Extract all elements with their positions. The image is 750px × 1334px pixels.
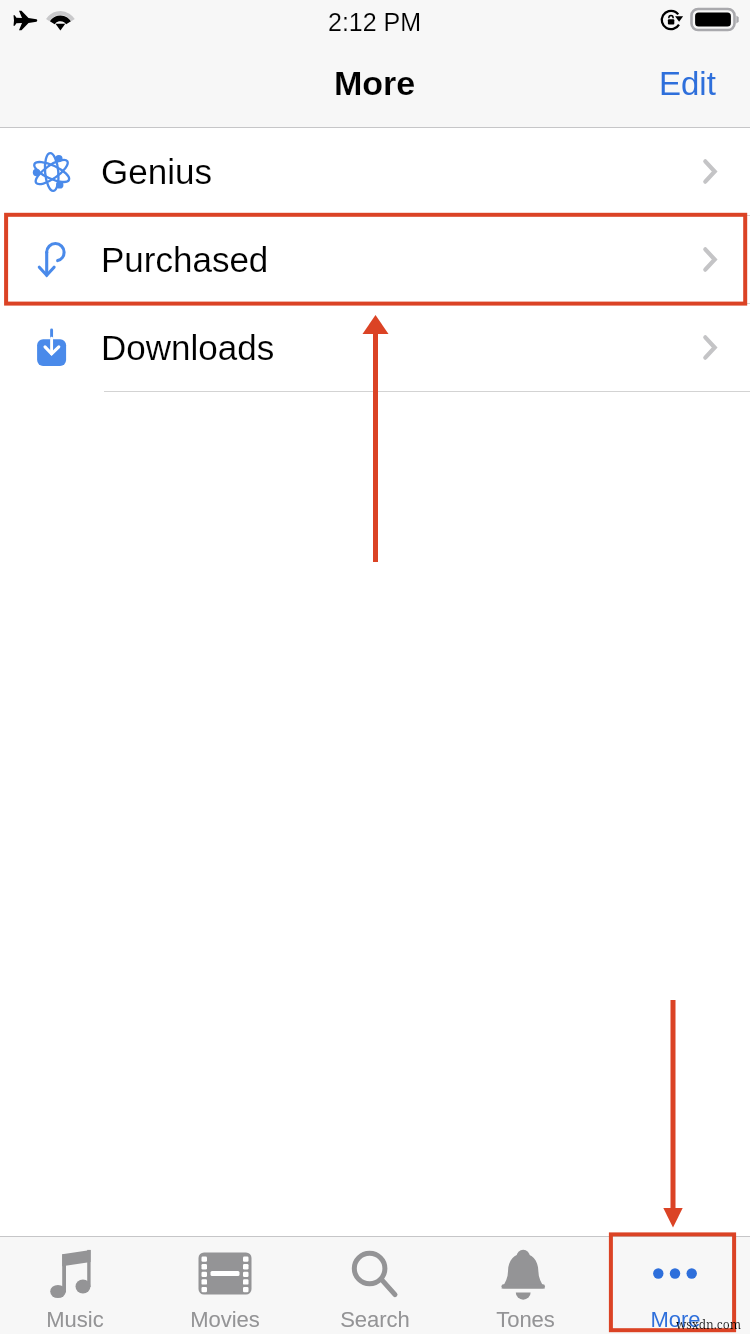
staticText: Search xyxy=(340,1307,410,1332)
staticText: Purchased xyxy=(101,240,269,279)
staticText: More xyxy=(334,64,416,102)
button[interactable]: Purchased xyxy=(0,216,750,303)
button[interactable]: Music xyxy=(0,1237,150,1334)
button[interactable]: More xyxy=(600,1237,750,1334)
staticText: Music xyxy=(46,1307,104,1332)
staticText: 2:12 PM xyxy=(328,8,422,36)
button[interactable]: Movies xyxy=(150,1237,300,1334)
staticText: wsxdn.com xyxy=(676,1316,741,1332)
staticText: Genius xyxy=(101,152,212,191)
button[interactable]: Downloads xyxy=(0,304,750,391)
staticText: Edit xyxy=(659,65,716,102)
staticText: Movies xyxy=(190,1307,260,1332)
staticText: Tones xyxy=(496,1307,555,1332)
staticText: More xyxy=(650,1307,701,1332)
button[interactable]: Tones xyxy=(450,1237,600,1334)
button[interactable]: Edit xyxy=(635,48,750,127)
button[interactable]: Search xyxy=(300,1237,450,1334)
staticText: Downloads xyxy=(101,328,275,367)
button[interactable]: Genius xyxy=(0,128,750,215)
